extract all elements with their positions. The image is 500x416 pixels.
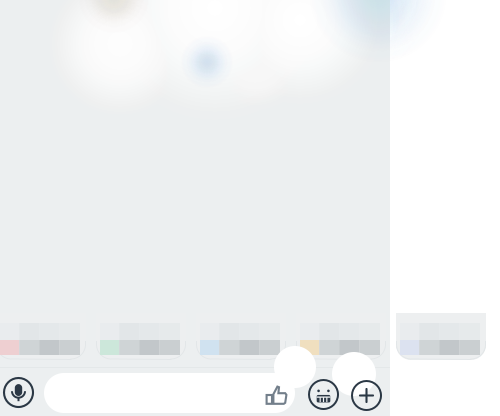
button[interactable] [96,313,186,360]
button[interactable] [196,313,286,360]
button[interactable]: Emoji [309,380,338,409]
button[interactable]: Send a like [265,383,289,407]
button[interactable] [0,313,86,360]
button[interactable]: More options [352,381,381,410]
button[interactable] [296,313,386,360]
button[interactable]: Voice message [4,378,33,407]
button[interactable] [396,313,486,360]
